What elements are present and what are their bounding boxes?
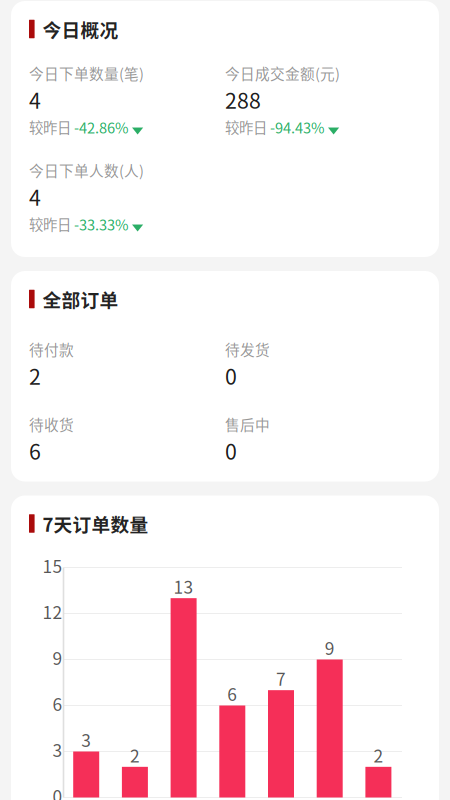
staticText: 4	[29, 181, 41, 212]
staticText: 待付款	[29, 338, 74, 360]
staticText: 今日成交金额(元)	[225, 62, 340, 84]
staticText: 13	[174, 574, 194, 599]
staticText: 15	[42, 553, 62, 578]
button[interactable]: 今日下单数量(笔)	[29, 65, 225, 135]
staticText: 今日下单数量(笔)	[29, 62, 144, 84]
staticText: 2	[373, 742, 383, 767]
staticText: 7天订单数量	[43, 510, 149, 537]
staticText: 较昨日	[29, 214, 71, 234]
staticText: 较昨日	[225, 117, 267, 137]
button[interactable]: 待收货	[29, 416, 225, 459]
button[interactable]: 待发货	[225, 341, 421, 384]
staticText: 288	[225, 84, 261, 115]
staticText: 3	[81, 727, 91, 752]
staticText: 3	[52, 737, 62, 762]
staticText: 6	[29, 435, 41, 466]
staticText: 4	[29, 84, 41, 115]
staticText: 0	[225, 360, 237, 391]
staticText: 全部订单	[43, 285, 119, 312]
staticText: 9	[325, 635, 335, 660]
staticText: 较昨日	[29, 117, 71, 137]
staticText: 今日概况	[43, 15, 119, 42]
staticText: 0	[52, 783, 62, 800]
staticText: 今日下单人数(人)	[29, 159, 144, 181]
button[interactable]: 今日成交金额(元)	[225, 65, 421, 135]
staticText: -94.43%	[270, 116, 325, 138]
staticText: 7	[276, 666, 286, 691]
staticText: 2	[130, 742, 140, 767]
button[interactable]: 待付款	[29, 341, 225, 384]
staticText: -33.33%	[74, 213, 129, 235]
staticText: 6	[227, 681, 237, 706]
staticText: 2	[29, 360, 41, 391]
staticText: 6	[52, 691, 62, 716]
staticText: 待发货	[225, 338, 270, 360]
button[interactable]: 售后中	[225, 416, 421, 459]
staticText: 12	[42, 599, 62, 624]
button[interactable]: 今日下单人数(人)	[29, 162, 225, 232]
staticText: 9	[52, 645, 62, 670]
staticText: 待收货	[29, 413, 74, 435]
staticText: 售后中	[225, 413, 270, 435]
staticText: 0	[225, 435, 237, 466]
staticText: -42.86%	[74, 116, 129, 138]
